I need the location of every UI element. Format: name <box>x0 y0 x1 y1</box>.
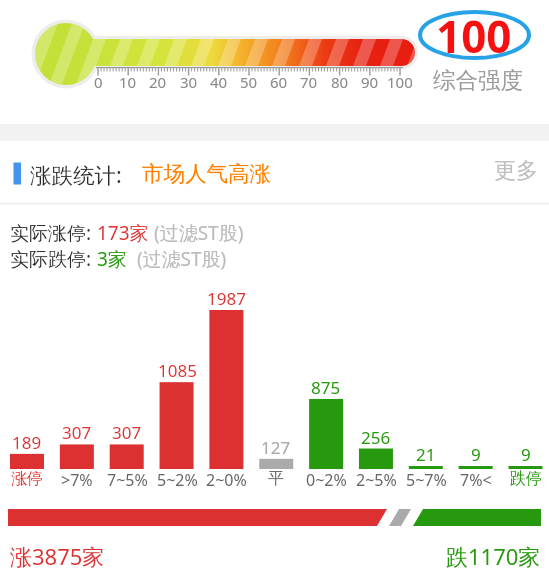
staticText: 5~7% <box>406 469 447 491</box>
staticText: 90 <box>361 72 379 92</box>
staticText: 70 <box>300 72 318 92</box>
staticText: 0 <box>94 72 103 92</box>
staticText: 60 <box>270 72 288 92</box>
staticText: 5~2% <box>157 469 198 491</box>
staticText: 1987 <box>207 287 246 310</box>
staticText: 30 <box>180 72 198 92</box>
staticText: 40 <box>210 72 228 92</box>
staticText: 更多 <box>494 157 538 185</box>
staticText: 1085 <box>158 359 197 382</box>
staticText: 涨停 <box>11 469 43 489</box>
staticText: 跌停 <box>510 469 542 489</box>
staticText: 307 <box>112 421 142 444</box>
staticText: 127 <box>261 436 291 459</box>
staticText: 21 <box>416 443 436 466</box>
staticText: 平 <box>268 469 284 489</box>
staticText: 涨3875家 <box>10 541 105 571</box>
staticText: 189 <box>12 431 42 454</box>
staticText: 9 <box>521 443 531 466</box>
staticText: 875 <box>311 376 341 399</box>
staticText: 2~0% <box>206 469 247 491</box>
staticText: 100 <box>387 72 413 92</box>
staticText: 9 <box>471 443 481 466</box>
staticText: 20 <box>149 72 167 92</box>
staticText: 256 <box>361 426 391 449</box>
staticText: 7%< <box>460 469 492 491</box>
staticText: 综合强度 <box>433 66 523 94</box>
staticText: 涨跌统计: <box>30 160 122 189</box>
staticText: 307 <box>62 421 92 444</box>
staticText: 173家 <box>97 220 149 246</box>
staticText: 50 <box>240 72 258 92</box>
staticText: 7~5% <box>107 469 148 491</box>
staticText: 2~5% <box>356 469 397 491</box>
staticText: (过滤ST股) <box>149 220 244 246</box>
staticText: (过滤ST股) <box>127 246 227 272</box>
staticText: 实际跌停: <box>10 246 97 272</box>
staticText: 0~2% <box>306 469 347 491</box>
staticText: 3家 <box>97 246 127 272</box>
staticText: 80 <box>331 72 349 92</box>
staticText: 跌1170家 <box>446 541 541 571</box>
button[interactable]: 更多 <box>478 154 538 188</box>
staticText: 100 <box>436 6 512 66</box>
staticText: 10 <box>119 72 137 92</box>
staticText: 市场人气高涨 <box>142 160 271 187</box>
staticText: >7% <box>61 469 93 491</box>
staticText: 实际涨停: <box>10 220 97 246</box>
